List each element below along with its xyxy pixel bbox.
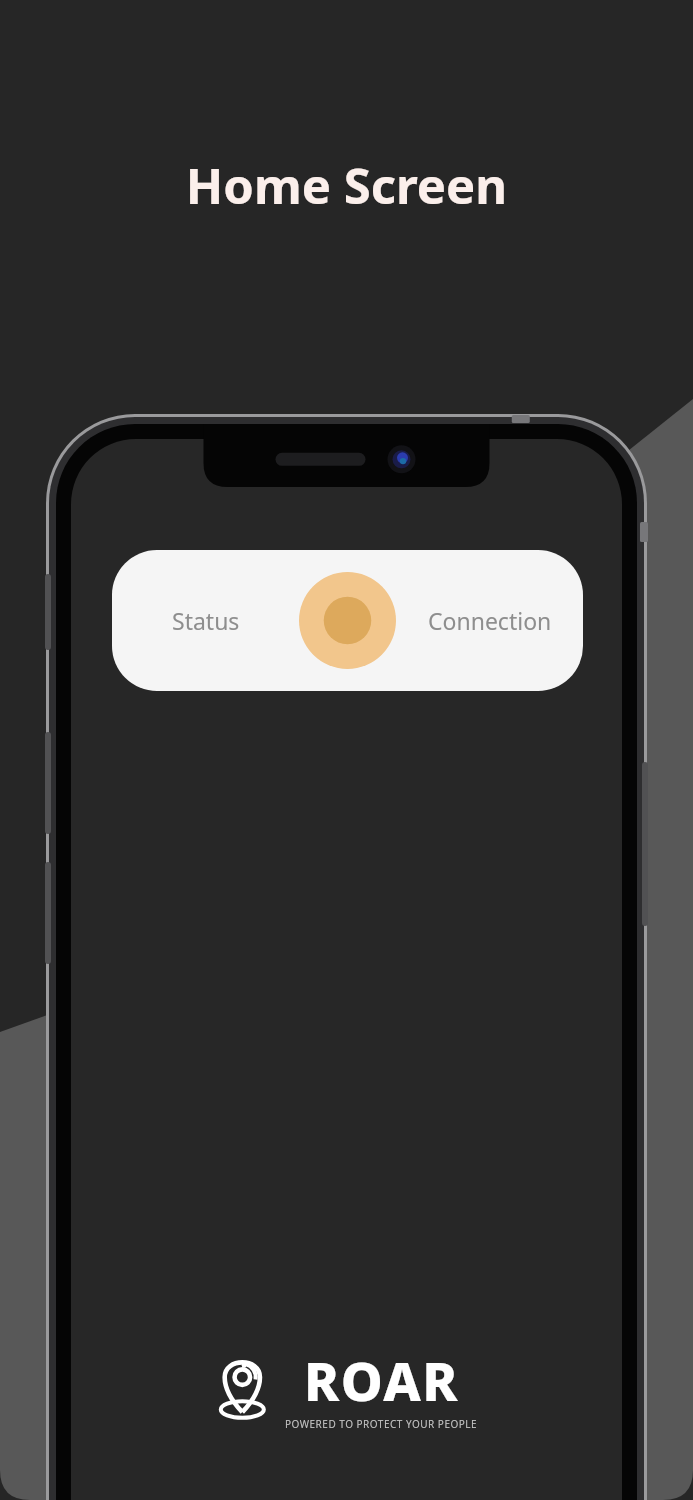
staticText: Connection	[428, 605, 552, 636]
staticText: ROAR	[304, 1344, 460, 1416]
staticText: Home Screen	[0, 152, 693, 219]
staticText: Status	[172, 605, 240, 636]
staticText: POWERED TO PROTECT YOUR PEOPLE	[285, 1417, 478, 1431]
button[interactable]: Status	[112, 550, 583, 691]
other: ROAR logo	[216, 1353, 272, 1423]
